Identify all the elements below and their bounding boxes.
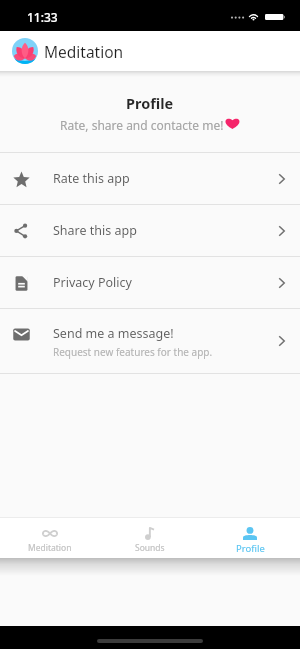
button[interactable]: Meditation <box>0 518 100 558</box>
staticText: Meditation <box>28 542 72 554</box>
staticText: Sounds <box>135 542 165 554</box>
button[interactable]: Share <box>0 205 300 256</box>
other: Rate <box>13 171 30 188</box>
staticText: Profile <box>236 542 265 555</box>
staticText: Rate, share and contacte me! <box>60 117 224 133</box>
staticText: Send me a message! <box>53 325 174 342</box>
staticText: Profile <box>126 93 174 113</box>
staticText: Meditation <box>44 41 124 62</box>
button[interactable]: Sounds <box>100 518 200 558</box>
staticText: Rate this app <box>53 170 130 187</box>
button[interactable]: Privacy Policy <box>0 257 300 308</box>
button[interactable]: Profile <box>200 518 300 558</box>
button[interactable]: Send me a message <box>0 309 300 373</box>
staticText: Request new features for the app. <box>53 345 213 359</box>
other: Send me a message <box>13 326 30 343</box>
button[interactable]: Rate <box>0 153 300 204</box>
staticText: 11:33 <box>27 9 58 25</box>
other: Share <box>13 223 30 240</box>
other: Privacy Policy <box>13 275 30 292</box>
staticText: Share this app <box>53 222 137 239</box>
staticText: Privacy Policy <box>53 274 132 291</box>
